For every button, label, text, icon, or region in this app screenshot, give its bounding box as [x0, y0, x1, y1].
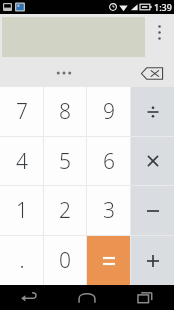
button[interactable]: 2: [44, 186, 86, 235]
staticText: 0: [59, 246, 71, 275]
button[interactable]: Home: [58, 285, 116, 310]
staticText: 9: [103, 97, 115, 126]
button[interactable]: Multiply: [131, 137, 174, 185]
button[interactable]: 0: [44, 236, 86, 285]
button[interactable]: 9: [87, 87, 130, 136]
button[interactable]: 3: [87, 186, 130, 235]
button[interactable]: Recent apps: [116, 285, 174, 310]
button[interactable]: 8: [44, 87, 86, 136]
button[interactable]: Add: [131, 236, 174, 285]
staticText: 3: [103, 196, 115, 225]
staticText: 5: [59, 147, 71, 176]
button[interactable]: 4: [0, 137, 43, 185]
button[interactable]: More options: [145, 14, 174, 58]
button[interactable]: Subtract: [131, 186, 174, 235]
staticText: 7: [16, 97, 28, 126]
button[interactable]: .: [0, 236, 43, 285]
staticText: 6: [103, 147, 115, 176]
staticText: .: [19, 246, 25, 275]
staticText: 2: [59, 196, 71, 225]
staticText: 1: [16, 196, 28, 225]
staticText: 8: [59, 97, 71, 126]
button[interactable]: 5: [44, 137, 86, 185]
button[interactable]: Divide: [131, 87, 174, 136]
button[interactable]: Equals: [87, 236, 130, 285]
staticText: 4: [16, 147, 28, 176]
button[interactable]: 1: [0, 186, 43, 235]
button[interactable]: More pad: [46, 62, 82, 84]
button[interactable]: Back: [0, 285, 58, 310]
button[interactable]: 6: [87, 137, 130, 185]
staticText: 1:39: [154, 1, 172, 13]
button[interactable]: Delete: [137, 62, 167, 84]
button[interactable]: 7: [0, 87, 43, 136]
